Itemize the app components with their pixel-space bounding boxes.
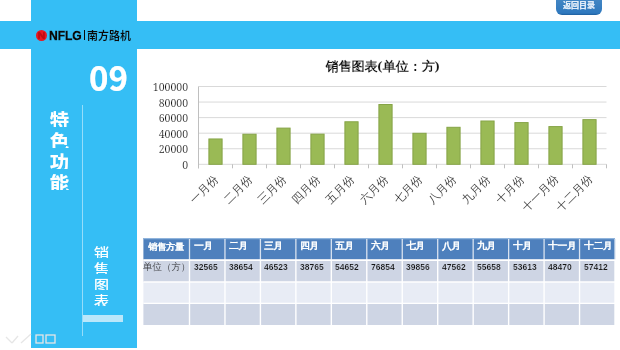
staticText: 功 bbox=[50, 148, 70, 169]
staticText: 一月份 bbox=[187, 172, 221, 206]
staticText: 40000 bbox=[146, 127, 188, 141]
staticText: 一月 bbox=[194, 240, 213, 252]
staticText: 特 bbox=[50, 106, 70, 127]
staticText: 57412 bbox=[584, 262, 608, 271]
button[interactable]: NFLG 南方路机 bbox=[36, 27, 131, 43]
staticText: 图 bbox=[94, 274, 110, 290]
staticText: 三月 bbox=[264, 240, 283, 252]
staticText: 表 bbox=[94, 290, 110, 306]
staticText: 四月 bbox=[300, 240, 319, 252]
staticText: 46523 bbox=[264, 262, 288, 271]
staticText: 48470 bbox=[548, 262, 572, 271]
staticText: 十一月份 bbox=[519, 172, 561, 214]
staticText: 销售方量 bbox=[148, 241, 184, 252]
staticText: 二月份 bbox=[221, 172, 255, 206]
staticText: 三月份 bbox=[255, 172, 289, 206]
staticText: 32565 bbox=[194, 262, 218, 271]
staticText: 0 bbox=[146, 158, 188, 172]
staticText: NFLG bbox=[49, 29, 82, 42]
staticText: 54652 bbox=[335, 262, 359, 271]
staticText: 二月 bbox=[229, 240, 248, 252]
staticText: 七月份 bbox=[391, 172, 425, 206]
staticText: 七月 bbox=[406, 240, 425, 252]
staticText: 南方路机 bbox=[87, 27, 131, 43]
staticText: 100000 bbox=[146, 80, 188, 94]
staticText: 47562 bbox=[442, 262, 466, 271]
staticText: 38654 bbox=[229, 262, 253, 271]
staticText: 20000 bbox=[146, 142, 188, 156]
staticText: 八月 bbox=[442, 240, 461, 252]
staticText: 十一月 bbox=[548, 240, 577, 252]
staticText: 九月份 bbox=[459, 172, 493, 206]
staticText: 39856 bbox=[406, 262, 430, 271]
staticText: 60000 bbox=[146, 111, 188, 125]
button[interactable]: 返回目录 bbox=[556, 0, 602, 15]
staticText: 销 bbox=[94, 242, 110, 258]
staticText: 九月 bbox=[477, 240, 496, 252]
staticText: 09 bbox=[89, 53, 128, 101]
staticText: 单位（方） bbox=[143, 261, 189, 272]
staticText: 八月份 bbox=[425, 172, 459, 206]
button[interactable]: 销售方量 bbox=[143, 240, 189, 252]
staticText: 六月份 bbox=[357, 172, 391, 206]
staticText: 销售图表(单位：方) bbox=[310, 57, 455, 75]
staticText: 五月 bbox=[335, 240, 354, 252]
staticText: 十月份 bbox=[493, 172, 527, 206]
staticText: 80000 bbox=[146, 96, 188, 110]
staticText: 十二月份 bbox=[553, 172, 595, 214]
staticText: 76854 bbox=[371, 262, 395, 271]
staticText: 53613 bbox=[513, 262, 537, 271]
staticText: 售 bbox=[94, 258, 110, 274]
staticText: 十月 bbox=[513, 240, 532, 252]
staticText: 五月份 bbox=[323, 172, 357, 206]
staticText: 六月 bbox=[371, 240, 390, 252]
staticText: 能 bbox=[50, 169, 70, 190]
staticText: 38765 bbox=[300, 262, 324, 271]
staticText: 十二月 bbox=[584, 240, 613, 252]
staticText: 返回目录 bbox=[563, 0, 595, 11]
staticText: 55658 bbox=[477, 262, 501, 271]
staticText: 色 bbox=[50, 127, 70, 148]
staticText: 四月份 bbox=[289, 172, 323, 206]
